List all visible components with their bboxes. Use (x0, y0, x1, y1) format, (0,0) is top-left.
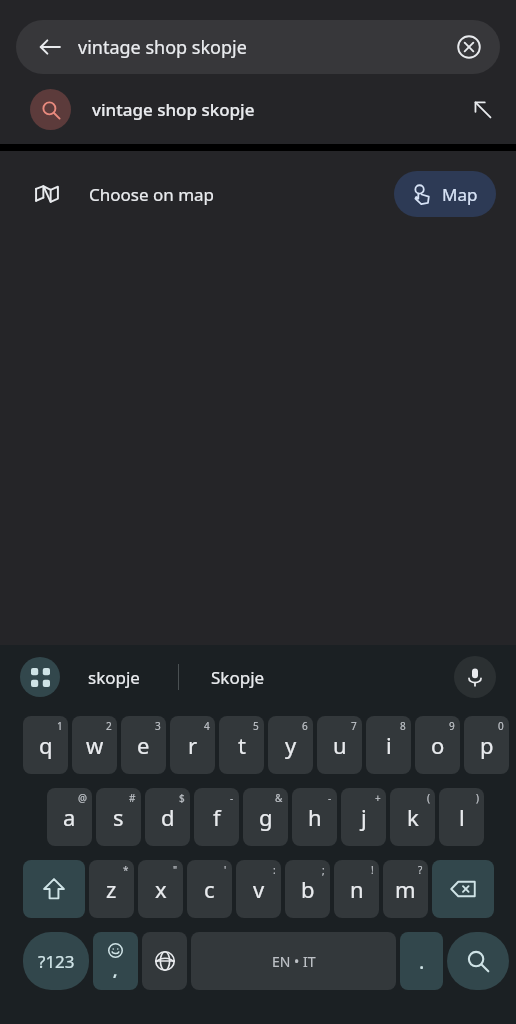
staticText: h (308, 802, 322, 832)
button[interactable]: w (72, 716, 117, 774)
button[interactable]: EN • IT (191, 932, 396, 990)
staticText: q (39, 730, 53, 760)
button[interactable]: Shift (23, 860, 85, 918)
button[interactable]: Change language (142, 932, 187, 990)
button[interactable]: m (383, 860, 428, 918)
staticText: o (431, 730, 445, 760)
staticText: ' (224, 863, 227, 877)
staticText: x (155, 874, 167, 904)
button[interactable]: Insert suggestion (462, 89, 502, 129)
staticText: , (113, 960, 118, 980)
staticText: + (375, 791, 381, 805)
button[interactable]: p (464, 716, 509, 774)
button[interactable]: Toolbar (20, 657, 60, 697)
staticText: 5 (253, 719, 259, 733)
staticText: ?123 (38, 950, 75, 973)
staticText: r (188, 730, 198, 760)
staticText: Skopje (211, 666, 265, 689)
staticText: & (275, 791, 283, 805)
staticText: " (173, 863, 178, 877)
staticText: EN • IT (272, 952, 316, 971)
button[interactable]: skopje (88, 645, 178, 709)
staticText: z (106, 874, 117, 904)
staticText: $ (179, 791, 185, 805)
staticText: v (253, 874, 265, 904)
staticText: b (301, 874, 315, 904)
button[interactable]: g (243, 788, 288, 846)
button[interactable]: i (366, 716, 411, 774)
button[interactable]: l (439, 788, 484, 846)
staticText: skopje (88, 666, 140, 689)
staticText: 9 (449, 719, 455, 733)
button[interactable]: s (96, 788, 141, 846)
staticText: i (386, 730, 392, 760)
staticText: Choose on map (89, 183, 215, 206)
button[interactable]: vintage shop skopje (0, 74, 516, 144)
staticText: - (230, 791, 234, 805)
button[interactable]: Backspace (432, 860, 494, 918)
button[interactable]: n (334, 860, 379, 918)
button[interactable]: Clear (452, 30, 486, 64)
button[interactable]: j (341, 788, 386, 846)
staticText: 0 (498, 719, 504, 733)
staticText: t (238, 730, 246, 760)
button[interactable]: . (400, 932, 443, 990)
staticText: ? (418, 863, 423, 877)
staticText: ( (427, 791, 430, 805)
staticText: 7 (351, 719, 357, 733)
button[interactable]: u (317, 716, 362, 774)
staticText: 2 (106, 719, 112, 733)
staticText: y (285, 730, 297, 760)
button[interactable]: x (138, 860, 183, 918)
button[interactable]: t (219, 716, 264, 774)
staticText: u (333, 730, 347, 760)
button[interactable]: Skopje (211, 645, 321, 709)
staticText: s (113, 802, 124, 832)
staticText: n (350, 874, 364, 904)
staticText: j (361, 802, 367, 832)
button[interactable]: f (194, 788, 239, 846)
button[interactable]: Map (394, 171, 496, 217)
button[interactable]: b (285, 860, 330, 918)
button[interactable]: h (292, 788, 337, 846)
button[interactable]: e (121, 716, 166, 774)
button[interactable]: v (236, 860, 281, 918)
staticText: 4 (204, 719, 210, 733)
button[interactable]: ?123 (23, 932, 89, 990)
button[interactable]: z (89, 860, 134, 918)
staticText: e (137, 730, 150, 760)
staticText: l (459, 802, 465, 832)
button[interactable]: Search (447, 932, 509, 990)
staticText: 3 (155, 719, 161, 733)
staticText: g (259, 802, 273, 832)
staticText: f (213, 802, 221, 832)
button[interactable]: k (390, 788, 435, 846)
staticText: a (63, 802, 76, 832)
button[interactable]: Emoji (93, 932, 138, 990)
button[interactable]: o (415, 716, 460, 774)
button[interactable]: c (187, 860, 232, 918)
staticText: vintage shop skopje (92, 98, 255, 121)
button[interactable]: d (145, 788, 190, 846)
button[interactable]: Voice input (454, 656, 496, 698)
staticText: @ (78, 791, 87, 805)
button[interactable]: Back (30, 27, 70, 67)
staticText: m (395, 874, 416, 904)
staticText: w (86, 730, 104, 760)
button[interactable]: a (47, 788, 92, 846)
staticText: - (328, 791, 332, 805)
staticText: * (123, 863, 129, 877)
staticText: vintage shop skopje (78, 35, 247, 60)
staticText: 6 (302, 719, 308, 733)
staticText: k (407, 802, 419, 832)
button[interactable]: r (170, 716, 215, 774)
staticText: d (161, 802, 175, 832)
staticText: 8 (400, 719, 406, 733)
staticText: Map (442, 183, 478, 206)
button[interactable]: Choose on map (0, 151, 516, 237)
button[interactable]: y (268, 716, 313, 774)
button[interactable]: q (23, 716, 68, 774)
staticText: # (129, 791, 136, 805)
staticText: ) (476, 791, 479, 805)
staticText: p (480, 730, 494, 760)
